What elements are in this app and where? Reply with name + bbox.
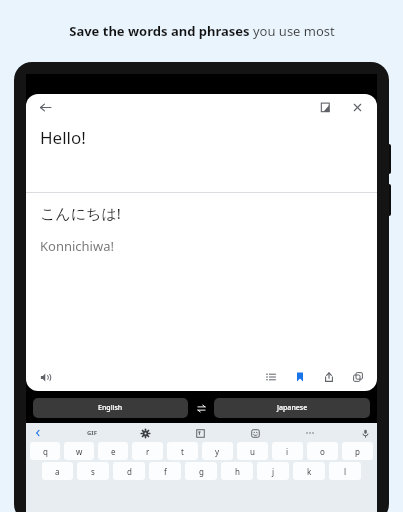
staticText: q xyxy=(43,446,48,457)
button[interactable]: Settings xyxy=(138,426,152,440)
staticText: r xyxy=(146,446,150,457)
button[interactable]: Translate xyxy=(193,426,207,440)
staticText: d xyxy=(127,466,132,477)
button[interactable]: Close xyxy=(347,97,367,117)
button[interactable]: Japanese xyxy=(214,398,370,418)
button[interactable]: GIF xyxy=(87,426,97,440)
button[interactable]: r xyxy=(132,442,163,460)
button[interactable]: Select text xyxy=(315,97,335,117)
button[interactable]: Save xyxy=(290,367,310,387)
button[interactable]: u xyxy=(237,442,268,460)
staticText: Save the words and phrases you use most xyxy=(69,22,335,40)
button[interactable]: q xyxy=(30,442,60,460)
button[interactable]: j xyxy=(257,462,289,480)
button[interactable]: t xyxy=(167,442,198,460)
staticText: l xyxy=(344,466,347,477)
staticText: j xyxy=(272,466,275,477)
staticText: GIF xyxy=(87,429,97,437)
button[interactable]: w xyxy=(64,442,94,460)
staticText: k xyxy=(307,466,312,477)
button[interactable]: More xyxy=(303,426,317,440)
button[interactable]: f xyxy=(149,462,181,480)
staticText: t xyxy=(181,446,184,457)
button[interactable]: p xyxy=(342,442,373,460)
staticText: y xyxy=(215,446,220,457)
staticText: English xyxy=(98,403,123,413)
staticText: Hello! xyxy=(40,126,86,149)
button[interactable]: k xyxy=(293,462,325,480)
staticText: Konnichiwa! xyxy=(40,237,114,255)
button[interactable]: Listen xyxy=(35,367,55,387)
button[interactable]: Share xyxy=(319,367,339,387)
staticText: f xyxy=(164,466,167,477)
staticText: a xyxy=(55,466,60,477)
button[interactable]: Emoji xyxy=(248,426,262,440)
button[interactable]: i xyxy=(272,442,303,460)
button[interactable]: Voice input xyxy=(358,426,372,440)
button[interactable]: h xyxy=(221,462,253,480)
staticText: i xyxy=(286,446,289,457)
staticText: p xyxy=(355,446,360,457)
button[interactable]: Copy xyxy=(348,367,368,387)
button[interactable]: d xyxy=(113,462,145,480)
staticText: こんにちは! xyxy=(40,203,121,223)
staticText: u xyxy=(250,446,255,457)
staticText: w xyxy=(76,446,83,457)
staticText: Japanese xyxy=(277,403,308,413)
button[interactable]: y xyxy=(202,442,233,460)
staticText: g xyxy=(199,466,204,477)
button[interactable]: a xyxy=(42,462,73,480)
staticText: o xyxy=(320,446,325,457)
button[interactable]: s xyxy=(77,462,109,480)
button[interactable]: l xyxy=(329,462,361,480)
button[interactable]: Expand xyxy=(31,426,45,440)
button[interactable]: Dictionary xyxy=(261,367,281,387)
button[interactable]: e xyxy=(98,442,128,460)
staticText: s xyxy=(91,466,95,477)
button[interactable]: g xyxy=(185,462,217,480)
button[interactable]: English xyxy=(33,398,188,418)
button[interactable]: Swap languages xyxy=(188,398,214,418)
staticText: e xyxy=(111,446,116,457)
button[interactable]: Back xyxy=(34,96,56,118)
button[interactable]: o xyxy=(307,442,338,460)
staticText: h xyxy=(235,466,240,477)
